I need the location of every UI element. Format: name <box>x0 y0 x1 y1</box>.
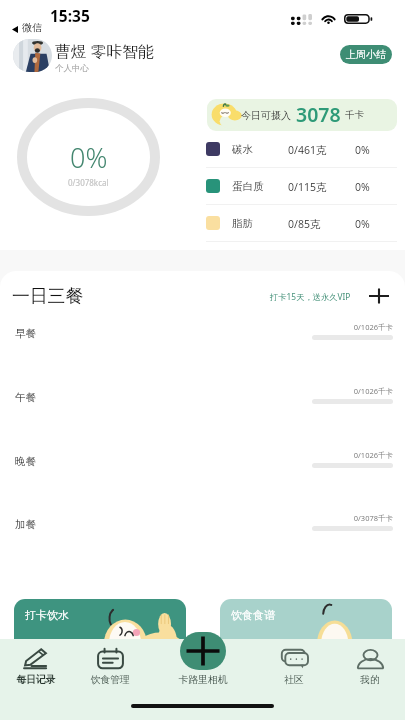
staticText: 个人中心 <box>55 63 89 74</box>
button[interactable]: 加餐 <box>0 506 405 566</box>
staticText: 0/1026千卡 <box>312 322 393 332</box>
staticText: 社区 <box>261 674 327 686</box>
staticText: 0/3078kcal <box>68 177 109 188</box>
staticText: 一日三餐 <box>12 285 84 307</box>
button[interactable]: 头像 <box>13 39 52 72</box>
staticText: 饮食食谱 <box>231 608 275 622</box>
staticText: 加餐 <box>15 518 36 531</box>
staticText: 早餐 <box>15 327 36 340</box>
button[interactable]: 每日记录 <box>3 643 69 691</box>
staticText: 蛋白质 <box>232 180 264 193</box>
staticText: 15:35 <box>50 5 90 26</box>
button[interactable]: 晚餐 <box>0 443 405 503</box>
staticText: 千卡 <box>345 109 364 121</box>
staticText: 微信 <box>22 21 42 34</box>
staticText: 曹煜 零咔智能 <box>55 40 154 62</box>
button[interactable]: 饮食食谱 <box>220 599 392 655</box>
button[interactable]: 上周小结 <box>340 45 392 64</box>
staticText: 打卡饮水 <box>25 608 69 622</box>
button[interactable]: 我的 <box>337 643 403 691</box>
button[interactable]: 饮食管理 <box>77 643 143 691</box>
staticText: 0% <box>355 217 370 231</box>
button[interactable]: 卡路里相机 <box>180 632 226 670</box>
button[interactable]: 早餐 <box>0 315 405 375</box>
staticText: 今日可摄入 <box>241 109 291 122</box>
button[interactable]: 添加餐食 <box>367 285 391 307</box>
staticText: 3078 <box>296 101 341 128</box>
staticText: 我的 <box>337 674 403 686</box>
staticText: 饮食管理 <box>77 674 143 686</box>
staticText: 碳水 <box>232 143 253 156</box>
staticText: 每日记录 <box>3 674 69 686</box>
button[interactable]: 打卡饮水 <box>14 599 186 655</box>
staticText: 0/115克 <box>288 180 327 194</box>
staticText: 上周小结 <box>346 48 386 61</box>
staticText: 0/3078千卡 <box>312 513 393 523</box>
staticText: 打卡15天，送永久VIP <box>270 291 351 302</box>
staticText: 0% <box>355 180 370 194</box>
staticText: 午餐 <box>15 391 36 404</box>
staticText: 0% <box>355 143 370 157</box>
staticText: 卡路里相机 <box>170 674 236 686</box>
staticText: 晚餐 <box>15 455 36 468</box>
staticText: 0/1026千卡 <box>312 386 393 396</box>
staticText: 0/1026千卡 <box>312 450 393 460</box>
button[interactable]: 社区 <box>261 643 327 691</box>
staticText: 脂肪 <box>232 217 253 230</box>
staticText: 0/461克 <box>288 143 327 157</box>
button[interactable]: 午餐 <box>0 379 405 439</box>
staticText: 0% <box>70 139 108 176</box>
staticText: 0/85克 <box>288 217 321 231</box>
